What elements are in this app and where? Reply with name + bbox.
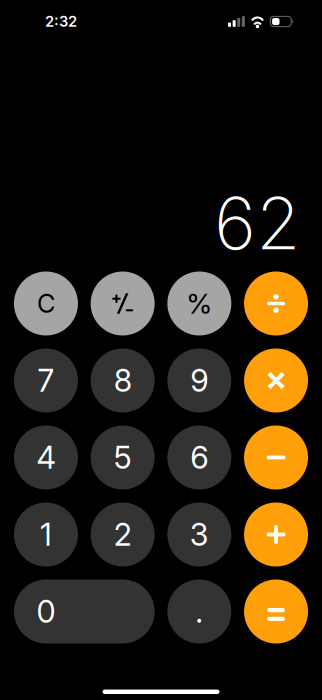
- staticText: 8: [114, 362, 132, 399]
- button[interactable]: 7: [14, 348, 78, 412]
- button[interactable]: 9: [167, 348, 231, 412]
- button[interactable]: Add: [244, 502, 308, 566]
- staticText: 1: [40, 516, 52, 553]
- button[interactable]: Equals: [244, 579, 308, 643]
- button[interactable]: 0: [14, 579, 155, 643]
- button[interactable]: 1: [14, 502, 78, 566]
- button[interactable]: Multiply: [244, 348, 308, 412]
- staticText: 0: [36, 593, 55, 630]
- button[interactable]: Plus Minus: [91, 271, 155, 335]
- button[interactable]: Divide: [244, 271, 308, 335]
- staticText: 2: [114, 516, 132, 553]
- button[interactable]: .: [167, 579, 231, 643]
- staticText: 3: [190, 516, 209, 553]
- button[interactable]: 8: [91, 348, 155, 412]
- staticText: 6: [190, 439, 208, 476]
- button[interactable]: %: [167, 271, 231, 335]
- staticText: 2:32: [45, 13, 77, 30]
- button[interactable]: Subtract: [244, 425, 308, 489]
- staticText: 5: [114, 439, 132, 476]
- button[interactable]: 2: [91, 502, 155, 566]
- staticText: 7: [37, 362, 54, 399]
- staticText: C: [37, 288, 55, 319]
- staticText: .: [195, 593, 203, 630]
- button[interactable]: 4: [14, 425, 78, 489]
- staticText: %: [186, 287, 212, 320]
- button[interactable]: 3: [167, 502, 231, 566]
- staticText: 4: [36, 439, 55, 476]
- button[interactable]: 6: [167, 425, 231, 489]
- button[interactable]: 5: [91, 425, 155, 489]
- button[interactable]: C: [14, 271, 78, 335]
- staticText: 9: [190, 362, 208, 399]
- staticText: 62: [214, 179, 300, 266]
